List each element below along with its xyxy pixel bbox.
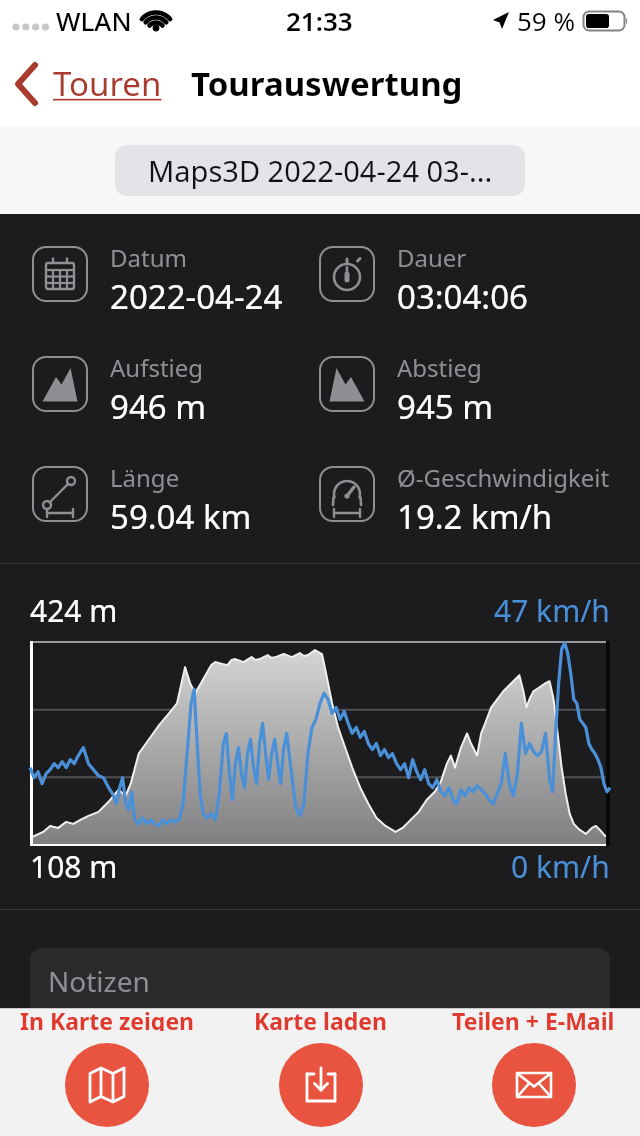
staticText: 2022-04-24 xyxy=(110,274,283,319)
staticText: Touren xyxy=(53,61,162,106)
staticText: In Karte zeigen xyxy=(20,1005,195,1031)
staticText: Notizen xyxy=(48,962,150,1000)
button[interactable] xyxy=(65,1043,149,1127)
staticText: Ø-Geschwindigkeit xyxy=(397,461,610,494)
button[interactable]: Maps3D 2022-04-24 03-... xyxy=(115,145,525,196)
staticText: 946 m xyxy=(110,384,207,429)
staticText: 424 m xyxy=(30,590,118,631)
staticText: Dauer xyxy=(397,241,467,274)
staticText: 21:33 xyxy=(286,3,353,38)
button[interactable]: In Karte zeigen xyxy=(0,1011,214,1127)
staticText: Maps3D 2022-04-24 03-... xyxy=(148,151,493,190)
button[interactable] xyxy=(279,1043,363,1127)
staticText: 03:04:06 xyxy=(397,274,528,319)
staticText: Tourauswertung xyxy=(191,61,463,106)
staticText: WLAN xyxy=(56,3,132,38)
staticText: Teilen + E-Mail xyxy=(452,1005,615,1031)
staticText: 0 km/h xyxy=(511,846,610,884)
staticText: 19.2 km/h xyxy=(397,494,553,539)
staticText: 47 km/h xyxy=(494,590,610,631)
staticText: Aufstieg xyxy=(110,351,204,384)
button[interactable]: Notizen xyxy=(30,948,610,1008)
staticText: 59.04 km xyxy=(110,494,252,539)
staticText: Abstieg xyxy=(397,351,482,384)
staticText: 108 m xyxy=(30,846,118,884)
staticText: 59 % xyxy=(517,3,576,38)
button[interactable]: Touren xyxy=(14,61,162,106)
button[interactable] xyxy=(492,1043,576,1127)
button[interactable]: Teilen + E-Mail xyxy=(427,1011,640,1127)
staticText: Länge xyxy=(110,461,180,494)
staticText: Karte laden xyxy=(254,1005,387,1031)
staticText: Datum xyxy=(110,241,187,274)
staticText: 945 m xyxy=(397,384,494,429)
button[interactable]: Karte laden xyxy=(214,1011,427,1127)
